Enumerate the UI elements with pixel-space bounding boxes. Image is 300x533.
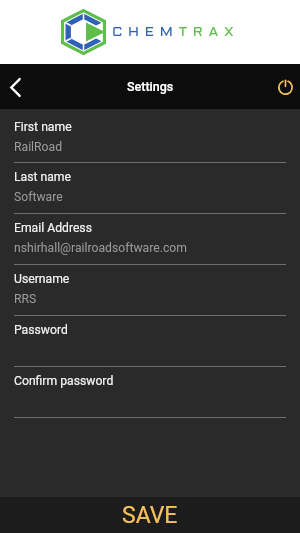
button[interactable]: Password (0, 316, 300, 367)
button[interactable]: Username (0, 265, 300, 316)
staticText: Email Address (14, 221, 92, 235)
button[interactable]: Back (1, 73, 29, 101)
staticText: CHEMTRAX (112, 26, 240, 39)
staticText: Confirm password (14, 374, 114, 388)
button[interactable]: Email Address (0, 214, 300, 265)
staticText: Last name (14, 170, 72, 184)
staticText: Software (14, 190, 63, 204)
button[interactable]: SAVE (0, 497, 300, 533)
staticText: Password (14, 323, 68, 337)
staticText: SAVE (122, 502, 178, 529)
button[interactable]: Last name (0, 163, 300, 214)
staticText: Settings (127, 79, 174, 94)
button[interactable]: First name (0, 109, 300, 163)
staticText: First name (14, 120, 72, 134)
staticText: Username (14, 272, 70, 286)
staticText: RailRoad (14, 140, 63, 154)
staticText: RRS (14, 292, 37, 306)
button[interactable]: Confirm password (0, 367, 300, 418)
staticText: nshirhall@railroadsoftware.com (14, 241, 187, 255)
button[interactable]: Log out (271, 73, 299, 101)
